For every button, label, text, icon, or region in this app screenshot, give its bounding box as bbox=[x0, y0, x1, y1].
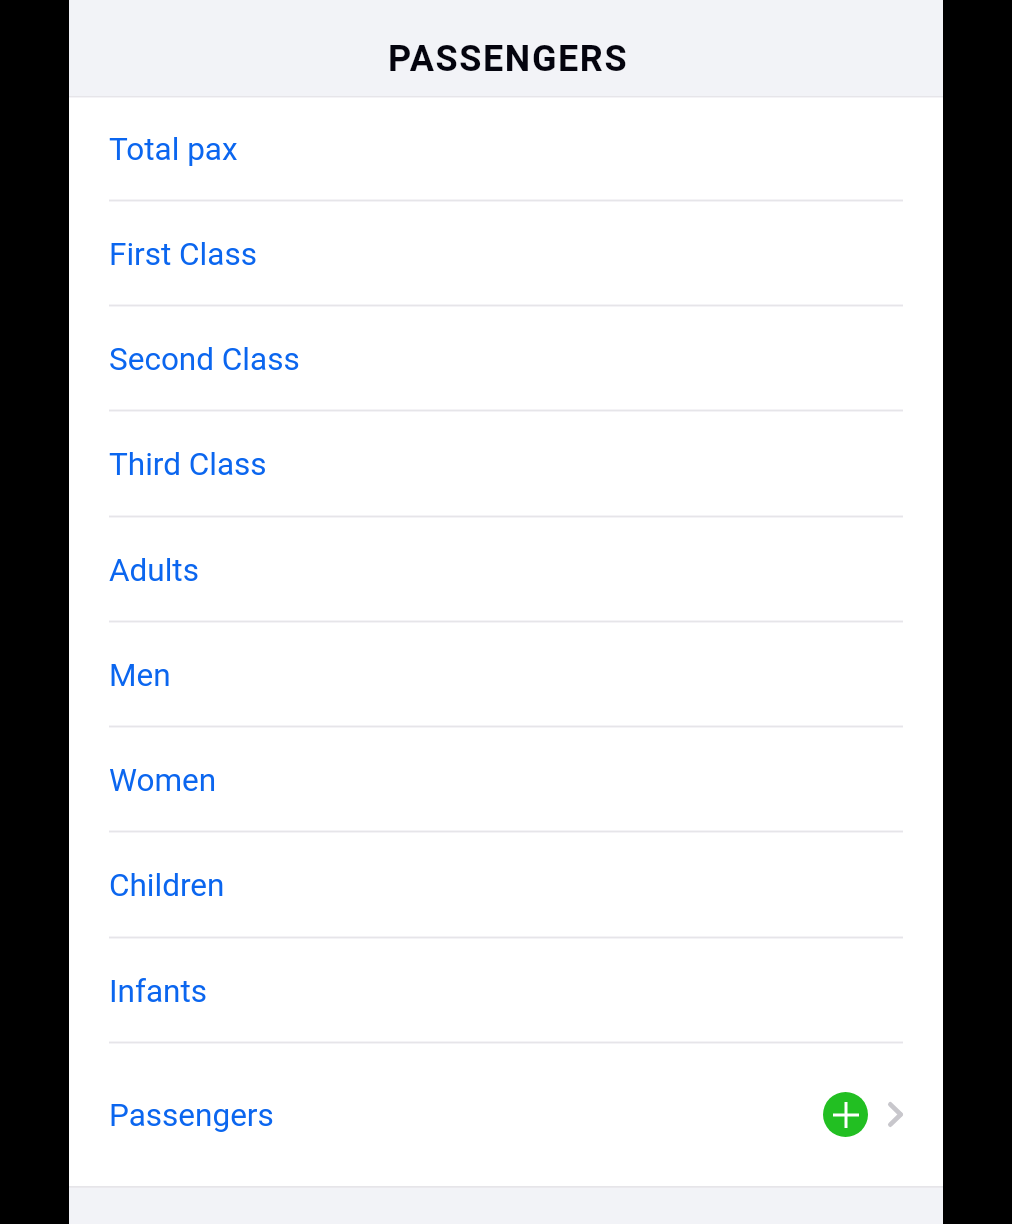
button[interactable]: Infants bbox=[69, 938, 943, 1042]
staticText: Men bbox=[109, 657, 171, 694]
staticText: First Class bbox=[109, 236, 257, 273]
staticText: Second Class bbox=[109, 341, 300, 378]
button[interactable]: First Class bbox=[69, 201, 943, 305]
staticText: Infants bbox=[109, 973, 208, 1010]
staticText: Third Class bbox=[109, 446, 267, 483]
button[interactable]: Men bbox=[69, 622, 943, 726]
button[interactable]: Adults bbox=[69, 517, 943, 621]
staticText: Children bbox=[109, 867, 225, 904]
staticText: Women bbox=[109, 762, 217, 799]
button[interactable]: Third Class bbox=[69, 411, 943, 515]
button[interactable]: Passengers bbox=[69, 1043, 943, 1186]
button[interactable]: Second Class bbox=[69, 306, 943, 410]
button[interactable]: Total pax bbox=[69, 97, 943, 200]
staticText: PASSENGERS bbox=[388, 38, 629, 80]
button[interactable]: Children bbox=[69, 832, 943, 936]
staticText: Total pax bbox=[109, 131, 238, 168]
button[interactable]: Women bbox=[69, 727, 943, 831]
staticText: Adults bbox=[109, 552, 199, 589]
button[interactable]: Add passenger bbox=[823, 1092, 868, 1137]
staticText: Passengers bbox=[109, 1097, 274, 1134]
